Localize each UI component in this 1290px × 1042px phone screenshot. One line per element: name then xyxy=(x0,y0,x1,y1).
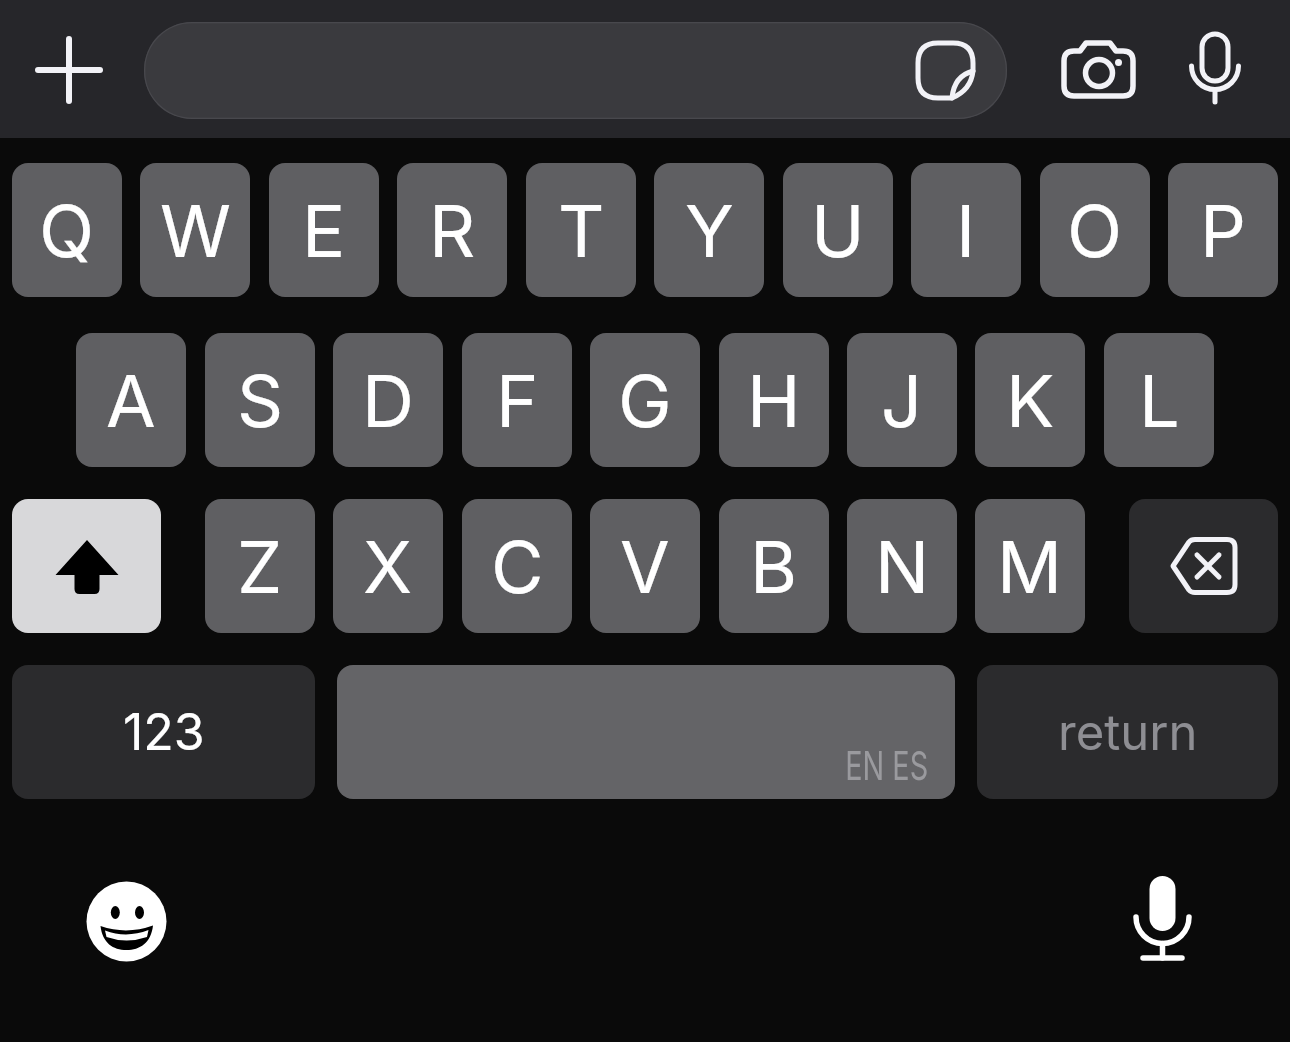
staticText: G xyxy=(618,357,672,444)
staticText: F xyxy=(496,357,539,444)
staticText: 123 xyxy=(123,702,205,762)
button[interactable]: O xyxy=(1040,163,1150,297)
staticText: EN ES xyxy=(845,741,929,789)
staticText: Z xyxy=(237,523,283,610)
staticText: N xyxy=(875,523,930,610)
staticText: M xyxy=(997,523,1063,610)
staticText: return xyxy=(1058,703,1198,762)
button[interactable]: Q xyxy=(12,163,122,297)
staticText: K xyxy=(1006,357,1055,444)
button[interactable]: 123 xyxy=(12,665,315,799)
staticText: L xyxy=(1139,357,1180,444)
button[interactable]: D xyxy=(333,333,443,467)
button[interactable]: EN ES xyxy=(337,665,955,799)
button[interactable]: X xyxy=(333,499,443,633)
staticText: C xyxy=(491,523,544,610)
staticText: S xyxy=(237,357,284,444)
button[interactable]: E xyxy=(269,163,379,297)
button[interactable]: Y xyxy=(654,163,764,297)
staticText: U xyxy=(811,187,865,274)
button[interactable] xyxy=(82,877,172,967)
staticText: O xyxy=(1067,187,1123,274)
staticText: P xyxy=(1200,187,1246,274)
button[interactable]: V xyxy=(590,499,700,633)
button[interactable]: S xyxy=(205,333,315,467)
button[interactable]: return xyxy=(977,665,1278,799)
button[interactable] xyxy=(30,31,108,109)
button[interactable]: Z xyxy=(205,499,315,633)
button[interactable]: M xyxy=(975,499,1085,633)
button[interactable]: F xyxy=(462,333,572,467)
button[interactable] xyxy=(1183,24,1247,112)
staticText: E xyxy=(302,187,346,274)
button[interactable]: A xyxy=(76,333,186,467)
button[interactable]: I xyxy=(911,163,1021,297)
button[interactable]: H xyxy=(719,333,829,467)
button[interactable]: P xyxy=(1168,163,1278,297)
button[interactable]: N xyxy=(847,499,957,633)
button[interactable] xyxy=(144,22,1007,119)
button[interactable] xyxy=(1130,868,1196,966)
staticText: D xyxy=(362,357,414,444)
button[interactable] xyxy=(908,33,982,107)
button[interactable]: T xyxy=(526,163,636,297)
button[interactable]: B xyxy=(719,499,829,633)
button[interactable]: C xyxy=(462,499,572,633)
staticText: A xyxy=(106,357,156,444)
button[interactable]: J xyxy=(847,333,957,467)
staticText: V xyxy=(620,523,670,610)
button[interactable] xyxy=(1129,499,1278,633)
staticText: Q xyxy=(39,187,95,274)
staticText: J xyxy=(881,357,923,444)
button[interactable] xyxy=(12,499,161,633)
button[interactable]: L xyxy=(1104,333,1214,467)
button[interactable]: K xyxy=(975,333,1085,467)
staticText: B xyxy=(750,523,798,610)
staticText: X xyxy=(363,523,413,610)
button[interactable]: R xyxy=(397,163,507,297)
staticText: R xyxy=(429,187,476,274)
staticText: I xyxy=(956,187,976,274)
button[interactable] xyxy=(1046,28,1150,114)
staticText: H xyxy=(747,357,801,444)
staticText: W xyxy=(160,187,231,274)
button[interactable]: W xyxy=(140,163,250,297)
staticText: T xyxy=(558,187,605,274)
button[interactable]: U xyxy=(783,163,893,297)
staticText: Y xyxy=(685,187,734,274)
button[interactable]: G xyxy=(590,333,700,467)
